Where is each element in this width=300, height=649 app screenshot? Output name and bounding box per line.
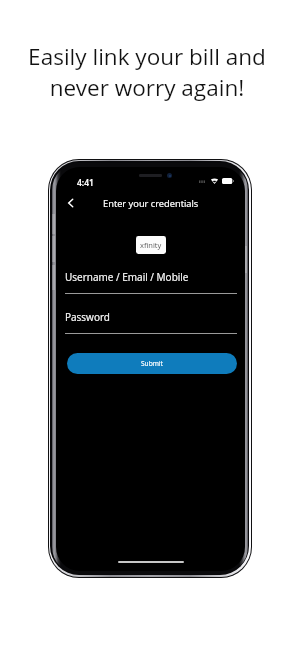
staticText: Submit [141, 359, 163, 368]
staticText: Password [65, 310, 110, 324]
staticText: 4:41 [77, 177, 94, 189]
button[interactable]: Back [60, 193, 80, 213]
staticText: xfinity [140, 240, 162, 250]
staticText: Enter your credentials [103, 197, 199, 210]
staticText: Username / Email / Mobile [65, 270, 189, 284]
button[interactable]: Submit [67, 353, 237, 374]
staticText: Easily link your bill and never worry ag… [28, 41, 266, 102]
